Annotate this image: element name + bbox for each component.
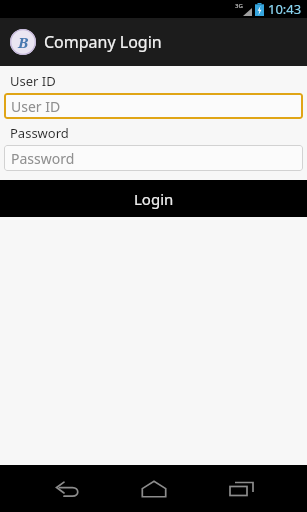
staticText: 10:43: [268, 0, 302, 18]
staticText: Company Login: [44, 31, 162, 53]
staticText: Password: [11, 149, 75, 168]
staticText: 3G: [235, 2, 243, 10]
button[interactable]: Back: [42, 465, 92, 512]
button[interactable]: Login: [0, 180, 307, 217]
staticText: User ID: [11, 97, 61, 116]
staticText: Login: [134, 189, 174, 209]
staticText: Password: [10, 124, 69, 142]
staticText: User ID: [10, 72, 56, 90]
staticText: B: [18, 32, 29, 52]
button[interactable]: Password: [4, 145, 303, 171]
button[interactable]: Home: [129, 465, 179, 512]
button[interactable]: Recent apps: [216, 465, 266, 512]
button[interactable]: User ID: [4, 93, 303, 119]
